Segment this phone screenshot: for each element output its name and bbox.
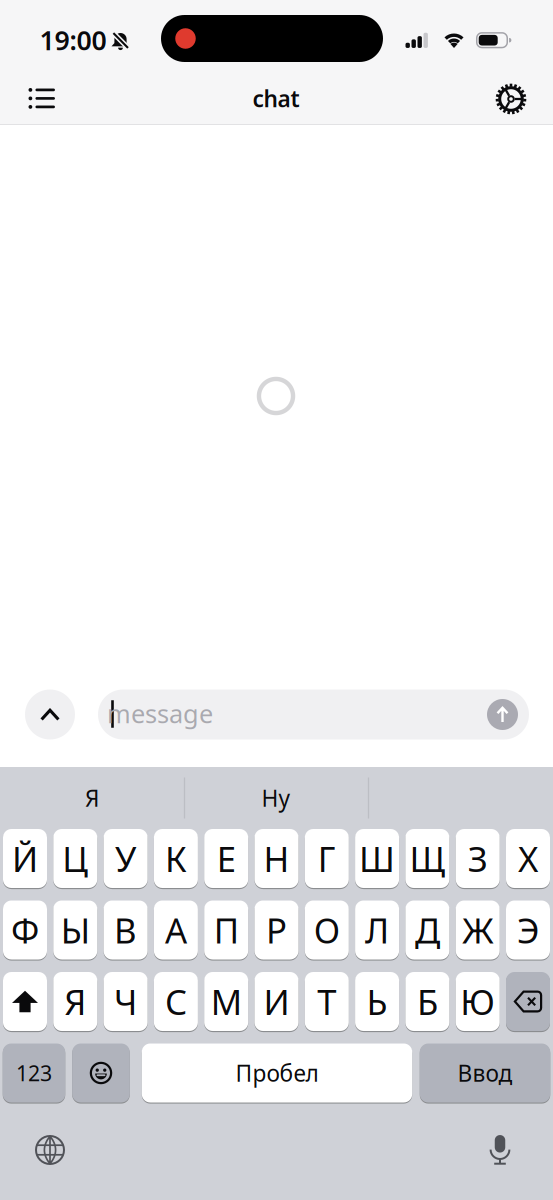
button[interactable]: Next keyboard [28, 1128, 72, 1172]
button[interactable]: М [204, 972, 248, 1031]
button[interactable]: Е [204, 829, 248, 888]
staticText: 123 [16, 1059, 52, 1087]
button[interactable]: Ч [104, 972, 148, 1031]
staticText: Ы [61, 907, 90, 953]
staticText: Ю [460, 978, 495, 1024]
button[interactable]: Ж [456, 900, 500, 959]
button[interactable]: Emoji [72, 1043, 130, 1102]
button[interactable]: Э [506, 900, 550, 959]
button[interactable]: Й [3, 829, 47, 888]
button[interactable]: Ну [187, 771, 365, 825]
button[interactable]: Б [405, 972, 449, 1031]
button[interactable]: Chats [20, 78, 64, 118]
button[interactable]: Send [487, 699, 518, 730]
button[interactable]: Ф [3, 900, 47, 959]
staticText: Ввод [457, 1058, 512, 1088]
button[interactable]: Ш [355, 829, 399, 888]
staticText: message [107, 697, 213, 730]
staticText: Г [318, 835, 336, 881]
staticText: Я [85, 783, 99, 813]
button[interactable]: Delete [506, 972, 550, 1031]
button[interactable]: Expand [25, 689, 75, 739]
button[interactable]: Ц [53, 829, 97, 888]
button[interactable]: Ввод [420, 1043, 550, 1102]
button[interactable]: Dictate [478, 1128, 522, 1172]
button[interactable]: Т [305, 972, 349, 1031]
staticText: П [214, 907, 239, 953]
staticText: З [468, 835, 488, 881]
button[interactable]: З [456, 829, 500, 888]
button[interactable]: Ь [355, 972, 399, 1031]
staticText: Д [415, 907, 440, 953]
staticText: Н [263, 835, 289, 881]
button[interactable]: Пробел [142, 1043, 412, 1102]
staticText: А [165, 907, 187, 953]
staticText: И [263, 978, 289, 1024]
staticText: Ь [367, 978, 388, 1024]
staticText: Т [317, 978, 336, 1024]
button[interactable]: У [104, 829, 148, 888]
button[interactable]: Я [53, 972, 97, 1031]
staticText: Ф [11, 907, 39, 953]
staticText: 19:00 [39, 22, 106, 58]
button[interactable]: В [104, 900, 148, 959]
button[interactable]: Ы [53, 900, 97, 959]
button[interactable]: С [154, 972, 198, 1031]
button[interactable]: Я [3, 771, 181, 825]
staticText: chat [252, 83, 299, 113]
button[interactable]: Х [506, 829, 550, 888]
staticText: Я [64, 978, 86, 1024]
staticText: Щ [409, 835, 445, 881]
staticText: Р [266, 907, 287, 953]
button[interactable]: Л [355, 900, 399, 959]
button[interactable]: А [154, 900, 198, 959]
button[interactable]: Settings [489, 79, 533, 119]
staticText: Е [217, 835, 236, 881]
button[interactable]: Р [254, 900, 298, 959]
staticText: Л [365, 907, 389, 953]
staticText: К [165, 835, 187, 881]
button[interactable]: Г [305, 829, 349, 888]
staticText: С [165, 978, 187, 1024]
staticText: В [114, 907, 137, 953]
button[interactable]: Shift [3, 972, 47, 1031]
button[interactable]: К [154, 829, 198, 888]
button[interactable]: О [305, 900, 349, 959]
staticText: Б [417, 978, 438, 1024]
staticText: Э [517, 907, 539, 953]
staticText: Х [518, 835, 538, 881]
staticText: Ну [261, 783, 290, 813]
button[interactable]: Н [254, 829, 298, 888]
staticText: Ж [462, 907, 493, 953]
button[interactable]: Д [405, 900, 449, 959]
button[interactable]: И [254, 972, 298, 1031]
staticText: Ч [114, 978, 137, 1024]
staticText: Й [12, 835, 38, 881]
staticText: Пробел [235, 1058, 318, 1088]
button[interactable]: 123 [3, 1043, 65, 1102]
staticText: Ш [359, 835, 395, 881]
staticText: У [115, 835, 136, 881]
button[interactable]: Message [98, 689, 529, 739]
button[interactable]: Ю [456, 972, 500, 1031]
staticText: Ц [62, 835, 88, 881]
staticText: О [314, 907, 340, 953]
staticText: М [211, 978, 242, 1024]
button[interactable]: Щ [405, 829, 449, 888]
button[interactable]: П [204, 900, 248, 959]
